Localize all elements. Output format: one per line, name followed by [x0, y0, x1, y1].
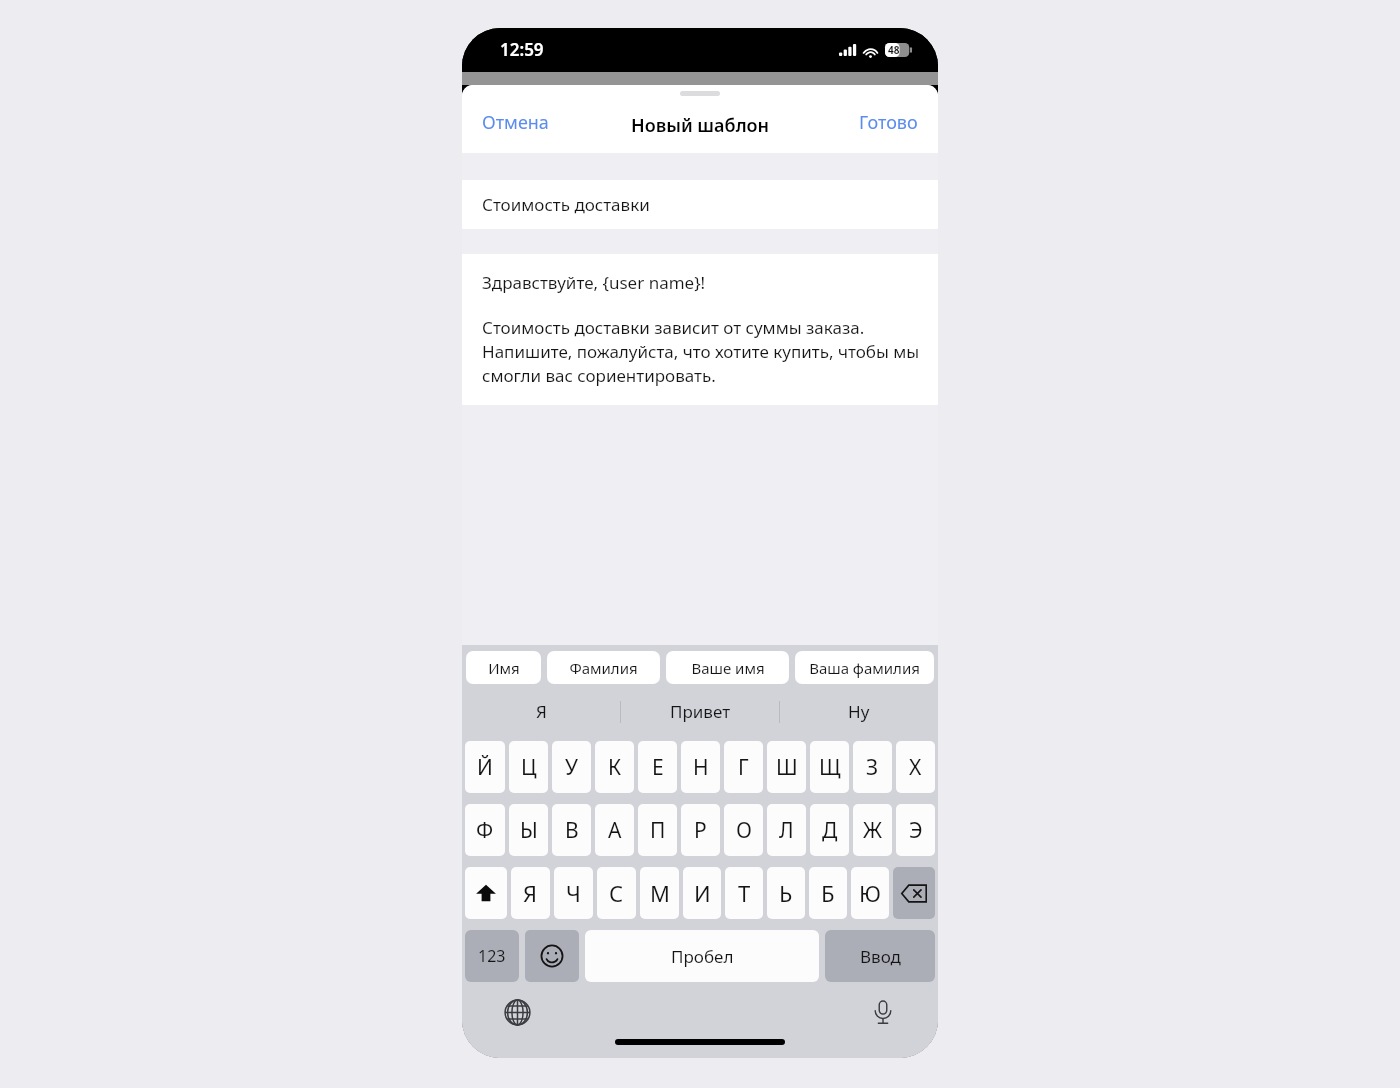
button[interactable]: В [552, 804, 591, 856]
staticText: Стоимость доставки [482, 193, 650, 216]
staticText: Е [652, 753, 664, 782]
staticText: Д [822, 816, 838, 845]
button[interactable]: Ф [465, 804, 505, 856]
button[interactable]: Ж [853, 804, 892, 856]
staticText: Ф [476, 816, 494, 845]
button[interactable]: С [597, 867, 636, 919]
button[interactable]: Фамилия [547, 651, 660, 684]
staticText: Отмена [482, 110, 549, 135]
button[interactable]: Ч [554, 867, 593, 919]
staticText: О [736, 816, 752, 845]
button[interactable]: Готово [845, 98, 938, 141]
staticText: 48 [888, 43, 900, 57]
button[interactable]: Dictation [864, 993, 902, 1031]
staticText: Э [909, 816, 923, 845]
staticText: Я [523, 878, 538, 908]
staticText: Х [909, 753, 922, 782]
staticText: Б [821, 878, 835, 908]
button[interactable]: П [638, 804, 677, 856]
button[interactable]: Стоимость доставки [462, 180, 938, 229]
button[interactable]: Здравствуйте, {user name}! [462, 254, 938, 405]
staticText: Пробел [671, 945, 734, 968]
staticText: Ш [776, 753, 798, 782]
button[interactable]: З [853, 741, 892, 793]
staticText: Стоимость доставки зависит от суммы зака… [482, 316, 920, 387]
staticText: Ну [848, 700, 870, 723]
staticText: Р [694, 816, 707, 845]
button[interactable]: Б [809, 867, 847, 919]
button[interactable]: У [552, 741, 591, 793]
staticText: Новый шаблон [631, 113, 770, 138]
button[interactable]: Й [465, 741, 505, 793]
staticText: Ы [520, 816, 538, 845]
button[interactable]: И [683, 867, 721, 919]
staticText: В [565, 816, 579, 845]
staticText: С [609, 878, 624, 908]
button[interactable]: Т [725, 867, 763, 919]
staticText: Ж [863, 816, 883, 845]
button[interactable]: Э [896, 804, 935, 856]
button[interactable]: Имя [466, 651, 541, 684]
staticText: Здравствуйте, {user name}! [482, 271, 706, 294]
button[interactable]: Ш [767, 741, 806, 793]
staticText: И [694, 878, 711, 908]
button[interactable]: Ну [780, 690, 938, 733]
staticText: Г [738, 753, 749, 782]
staticText: З [866, 753, 879, 782]
button[interactable]: Отмена [462, 98, 563, 141]
staticText: Й [477, 753, 493, 782]
button[interactable]: Р [681, 804, 720, 856]
button[interactable]: К [595, 741, 634, 793]
staticText: Ввод [860, 945, 901, 968]
button[interactable]: Пробел [585, 930, 819, 982]
button[interactable]: О [724, 804, 763, 856]
button[interactable]: Ваша фамилия [795, 651, 934, 684]
staticText: Готово [859, 110, 918, 135]
button[interactable]: Д [810, 804, 849, 856]
staticText: Щ [819, 753, 841, 782]
staticText: Ь [779, 878, 793, 908]
button[interactable]: Г [724, 741, 763, 793]
button[interactable]: Я [462, 690, 620, 733]
button[interactable]: Н [681, 741, 720, 793]
button[interactable]: Ваше имя [666, 651, 789, 684]
button[interactable]: Ь [767, 867, 805, 919]
staticText: Ч [566, 878, 581, 908]
staticText: У [565, 753, 578, 782]
staticText: Привет [670, 700, 731, 723]
staticText: Ваша фамилия [809, 658, 920, 678]
button[interactable]: Л [767, 804, 806, 856]
staticText: Ю [859, 878, 881, 908]
button[interactable]: Shift [465, 867, 507, 919]
staticText: 123 [478, 945, 506, 967]
staticText: К [608, 753, 622, 782]
button[interactable]: А [595, 804, 634, 856]
staticText: Л [779, 816, 794, 845]
button[interactable]: Ю [851, 867, 889, 919]
staticText: Ц [521, 753, 537, 782]
button[interactable]: М [640, 867, 679, 919]
staticText: П [650, 816, 666, 845]
staticText: Т [738, 878, 751, 908]
staticText: 12:59 [500, 38, 544, 61]
button[interactable]: Backspace [893, 867, 935, 919]
button[interactable]: Ы [509, 804, 548, 856]
staticText: А [608, 816, 622, 845]
staticText: М [650, 878, 670, 908]
button[interactable]: Х [896, 741, 935, 793]
button[interactable]: Щ [810, 741, 849, 793]
button[interactable]: Е [638, 741, 677, 793]
button[interactable]: Change keyboard language [498, 993, 536, 1031]
staticText: Н [693, 753, 709, 782]
button[interactable]: Я [511, 867, 550, 919]
button[interactable]: 123 [465, 930, 519, 982]
staticText: Фамилия [569, 658, 638, 678]
button[interactable]: Ц [509, 741, 548, 793]
button[interactable]: Привет [621, 690, 779, 733]
staticText: Ваше имя [691, 658, 765, 678]
staticText: Имя [488, 658, 520, 678]
button[interactable]: Emoji [525, 930, 579, 982]
staticText: Я [536, 700, 547, 723]
button[interactable]: Ввод [825, 930, 935, 982]
